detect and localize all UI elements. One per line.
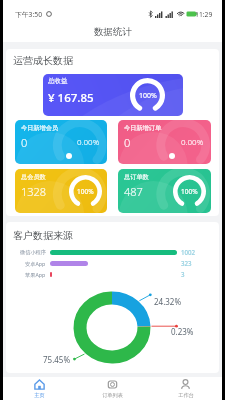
button[interactable]: 工作台 [149,377,222,400]
staticText: 0 [124,135,131,150]
staticText: 总收益 [48,77,68,85]
staticText: 487 [124,184,143,199]
staticText: 主页 [34,392,45,399]
staticText: 0 [21,135,28,150]
staticText: 0.00% [77,136,100,147]
button[interactable]: 今日新增会员 [15,120,107,164]
staticText: 今日新增会员 [21,124,59,132]
staticText: 11:29 [195,10,213,19]
staticText: 数据统计 [94,26,132,38]
staticText: 100% [139,91,157,101]
staticText: 总订单数 [124,173,149,181]
staticText: 苹果App [25,271,46,278]
staticText: 75.45% [43,354,71,365]
staticText: 总会员数 [21,173,46,181]
staticText: 0.00% [181,136,204,147]
staticText: 3 [181,270,185,278]
staticText: 客户数据来源 [13,229,73,242]
staticText: 微信小程序 [20,249,46,256]
staticText: 今日新增订单 [124,124,162,132]
button[interactable]: 总会员数 [15,169,107,213]
staticText: 1328 [21,184,47,199]
staticText: 323 [181,259,192,267]
staticText: 100% [77,187,94,196]
staticText: 24.32% [154,296,182,307]
button[interactable]: 订单列表 [76,377,149,400]
staticText: 工作台 [178,392,194,399]
staticText: 订单列表 [102,392,123,399]
staticText: 运营成长数据 [13,54,73,67]
button[interactable]: 主页 [3,377,76,400]
staticText: 100% [181,187,198,196]
button[interactable]: 总收益 [43,74,183,116]
staticText: 0.23% [171,326,194,337]
button[interactable]: 今日新增订单 [118,120,211,164]
staticText: 安卓App [25,260,46,267]
staticText: 下午3:50 [15,10,43,19]
staticText: 1002 [181,248,196,256]
staticText: ¥ 167.85 [48,90,94,106]
button[interactable]: 总订单数 [118,169,211,213]
